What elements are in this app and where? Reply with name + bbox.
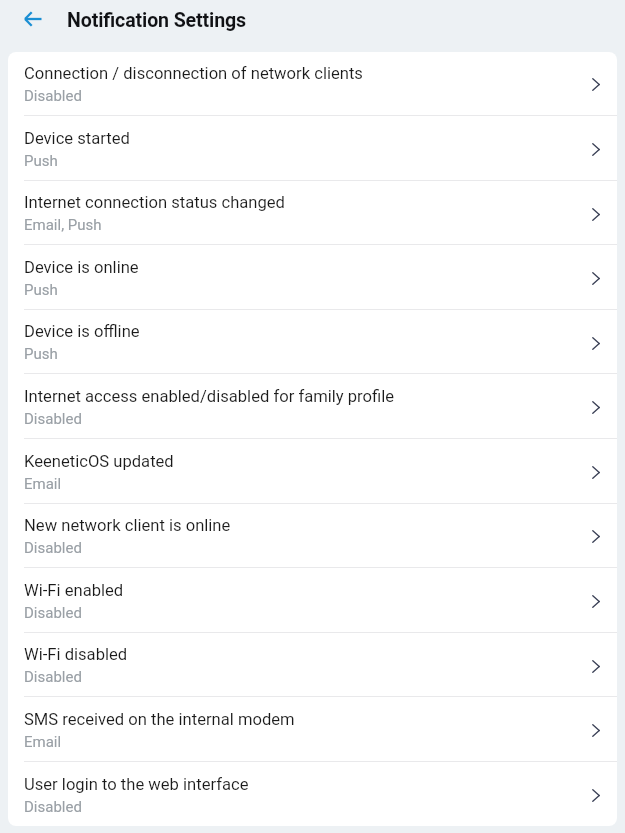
button[interactable]: Connection / disconnection of network cl… <box>8 52 617 115</box>
staticText: User login to the web interface <box>24 775 249 794</box>
staticText: Disabled <box>24 668 82 686</box>
staticText: SMS received on the internal modem <box>24 710 295 729</box>
staticText: Push <box>24 281 58 299</box>
button[interactable]: Internet connection status changed <box>8 181 617 244</box>
button[interactable]: Device started <box>8 116 617 180</box>
staticText: Email <box>24 733 62 751</box>
staticText: Wi-Fi enabled <box>24 581 124 600</box>
staticText: Disabled <box>24 604 82 622</box>
staticText: Email <box>24 475 62 493</box>
button[interactable]: Wi-Fi disabled <box>8 633 617 696</box>
staticText: Disabled <box>24 539 82 557</box>
staticText: Internet connection status changed <box>24 193 285 212</box>
button[interactable]: Device is online <box>8 245 617 309</box>
button[interactable]: Back <box>9 0 57 43</box>
staticText: Email, Push <box>24 216 102 234</box>
staticText: Device is offline <box>24 322 140 341</box>
staticText: Push <box>24 152 58 170</box>
button[interactable]: Internet access enabled/disabled for fam… <box>8 374 617 438</box>
staticText: KeeneticOS updated <box>24 452 174 471</box>
staticText: Device is online <box>24 258 139 277</box>
button[interactable]: Device is offline <box>8 310 617 373</box>
button[interactable]: Wi-Fi enabled <box>8 568 617 632</box>
staticText: Push <box>24 345 58 363</box>
staticText: Internet access enabled/disabled for fam… <box>24 387 395 406</box>
staticText: Wi-Fi disabled <box>24 645 128 664</box>
staticText: Disabled <box>24 798 82 816</box>
staticText: Device started <box>24 129 130 148</box>
staticText: Notification Settings <box>67 9 247 32</box>
button[interactable]: KeeneticOS updated <box>8 439 617 503</box>
staticText: Connection / disconnection of network cl… <box>24 64 363 83</box>
button[interactable]: User login to the web interface <box>8 762 617 826</box>
staticText: Disabled <box>24 87 82 105</box>
staticText: Disabled <box>24 410 82 428</box>
button[interactable]: New network client is online <box>8 504 617 567</box>
staticText: New network client is online <box>24 516 231 535</box>
button[interactable]: SMS received on the internal modem <box>8 697 617 761</box>
